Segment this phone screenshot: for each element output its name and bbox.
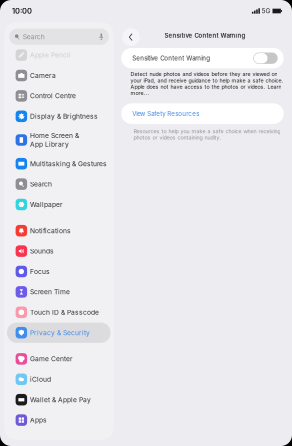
button[interactable]: Apple Pencil — [7, 45, 110, 65]
button[interactable]: Wallet & Apple Pay — [7, 389, 110, 410]
button[interactable]: Home Screen & — [7, 126, 110, 153]
button[interactable]: Multitasking & Gestures — [7, 153, 110, 174]
button[interactable]: Focus — [7, 261, 110, 282]
staticText: 10:00 — [12, 6, 32, 15]
button[interactable]: Sounds — [7, 241, 110, 261]
staticText: Detect nude photos and videos before the… — [130, 71, 283, 96]
staticText: Screen Time — [30, 288, 70, 296]
staticText: Search — [23, 33, 45, 41]
staticText: Touch ID & Passcode — [30, 308, 99, 316]
button[interactable]: Touch ID & Passcode — [7, 302, 110, 322]
staticText: Privacy & Security — [30, 329, 90, 337]
staticText: Sensitive Content Warning — [164, 32, 245, 39]
staticText: Control Centre — [30, 92, 76, 100]
staticText: Wallpaper — [30, 200, 63, 209]
button[interactable]: Privacy & Security — [7, 322, 110, 343]
staticText: 5G — [261, 7, 270, 15]
staticText: Apps — [30, 416, 47, 424]
button[interactable]: Game Center — [7, 349, 110, 369]
staticText: Search — [30, 180, 52, 188]
staticText: View Safety Resources — [132, 110, 199, 117]
button[interactable]: Notifications — [7, 220, 110, 241]
button[interactable]: Display & Brightness — [7, 106, 110, 126]
staticText: Apple Pencil — [30, 51, 71, 59]
staticText: Display & Brightness — [30, 112, 98, 120]
button[interactable]: iCloud — [7, 369, 110, 389]
staticText: Resources to help you make a safe choice… — [133, 128, 280, 141]
button[interactable]: Search — [7, 174, 110, 194]
button[interactable]: Screen Time — [7, 282, 110, 302]
button[interactable]: Wallpaper — [7, 194, 110, 215]
button[interactable]: Control Centre — [7, 86, 110, 106]
staticText: Sensitive Content Warning — [132, 54, 210, 62]
staticText: Camera — [30, 71, 56, 80]
staticText: Game Center — [30, 355, 73, 363]
button[interactable]: View Safety Resources — [121, 103, 284, 124]
button[interactable]: Camera — [7, 65, 110, 86]
staticText: Wallet & Apple Pay — [30, 396, 91, 404]
staticText: Sounds — [30, 247, 54, 255]
button[interactable]: Back — [122, 28, 140, 46]
staticText: Focus — [30, 267, 50, 276]
button[interactable]: Apps — [7, 410, 110, 430]
staticText: Multitasking & Gestures — [30, 160, 107, 168]
staticText: Notifications — [30, 227, 71, 235]
staticText: App Library — [30, 140, 69, 148]
button[interactable]: Sensitive Content Warning — [121, 48, 284, 68]
staticText: iCloud — [30, 375, 51, 383]
staticText: Home Screen & — [30, 131, 79, 140]
